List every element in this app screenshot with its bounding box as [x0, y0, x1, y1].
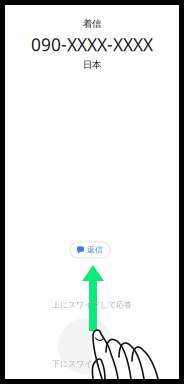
staticText: 090-XXXX-XXXX — [31, 33, 153, 56]
staticText: 下にスワイプして拒否 — [52, 359, 132, 369]
staticText: 日本 — [83, 59, 101, 70]
staticText: 返信 — [87, 245, 103, 255]
staticText: 着信 — [83, 18, 101, 29]
button[interactable]: 返信 — [70, 242, 110, 258]
staticText: 上にスワイプして応答 — [52, 300, 132, 310]
